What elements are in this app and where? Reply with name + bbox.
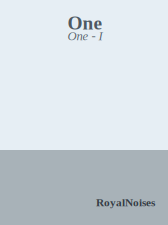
staticText: One (67, 12, 102, 34)
staticText: RoyalNoises (96, 196, 155, 209)
staticText: One - I (67, 29, 102, 43)
button[interactable]: One, One - I, RoyalNoises (0, 0, 168, 225)
